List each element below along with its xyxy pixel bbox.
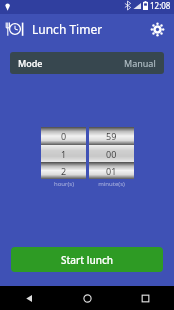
button[interactable]: 59 — [89, 127, 134, 145]
button[interactable]: 0 — [41, 127, 86, 145]
button[interactable]: Start lunch — [11, 247, 163, 272]
staticText: 2 — [61, 165, 67, 177]
button[interactable]: Home — [58, 286, 116, 310]
button[interactable]: 00 — [89, 145, 134, 162]
button[interactable]: 1 — [41, 145, 86, 162]
button[interactable]: Mode — [10, 52, 164, 74]
button[interactable]: Settings — [145, 17, 169, 41]
button[interactable]: Recent apps — [116, 286, 174, 310]
button[interactable]: 01 — [89, 162, 134, 179]
button[interactable]: Back — [0, 286, 58, 310]
staticText: hour(s) — [54, 180, 74, 188]
staticText: 1 — [61, 148, 67, 160]
staticText: Start lunch — [61, 253, 114, 267]
staticText: Mode — [18, 57, 43, 69]
staticText: Manual — [124, 57, 156, 69]
staticText: 00 — [106, 148, 117, 160]
button[interactable]: 2 — [41, 162, 86, 179]
staticText: 12:08 — [150, 0, 171, 11]
staticText: 59 — [106, 130, 117, 142]
staticText: minute(s) — [98, 180, 125, 188]
staticText: 01 — [106, 165, 117, 177]
staticText: Lunch Timer — [32, 21, 103, 37]
staticText: 0 — [61, 130, 67, 142]
